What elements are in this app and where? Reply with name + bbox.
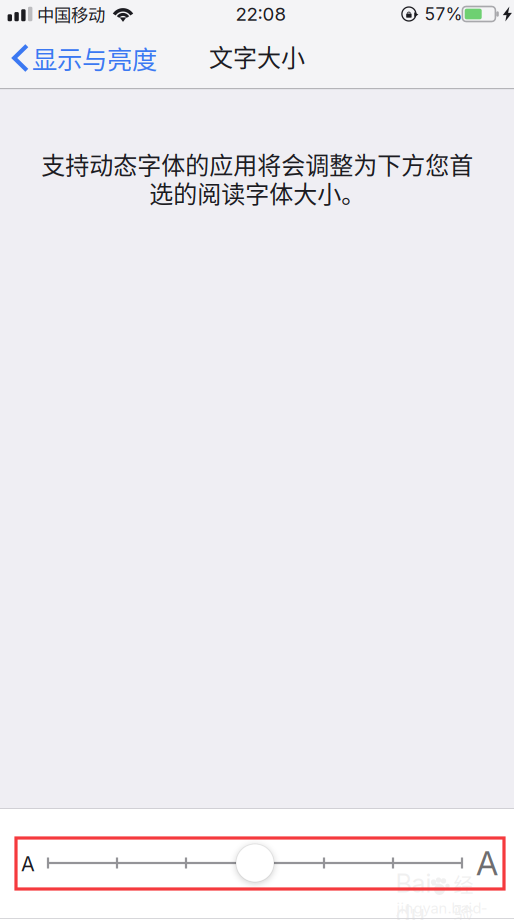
staticText: 支持动态字体的应用将会调整为下方您首选的阅读字体大小。: [41, 146, 473, 210]
staticText: 经验: [453, 869, 473, 920]
staticText: 22:08: [235, 3, 286, 25]
staticText: Baidu: [395, 868, 440, 920]
button[interactable]: 显示与亮度: [0, 31, 163, 85]
staticText: 中国移动: [37, 1, 105, 27]
staticText: 显示与亮度: [32, 40, 157, 76]
staticText: A: [476, 843, 498, 883]
staticText: 文字大小: [209, 39, 305, 73]
staticText: A: [21, 852, 35, 876]
staticText: jingyan.baidu.com: [396, 899, 486, 920]
staticText: 57%: [424, 3, 462, 24]
